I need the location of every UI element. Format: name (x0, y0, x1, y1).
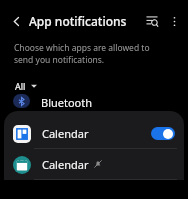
button[interactable]: Back (5, 10, 27, 32)
button[interactable]: Calendar (4, 118, 184, 149)
button[interactable]: Search (141, 10, 163, 32)
button[interactable]: All (9, 76, 43, 96)
staticText: All (15, 80, 26, 92)
button[interactable]: Bluetooth (0, 97, 188, 111)
button[interactable]: Calendar (4, 149, 184, 180)
staticText: Bluetooth (41, 95, 93, 109)
button[interactable]: More options (163, 10, 185, 32)
staticText: Calendar (42, 157, 89, 172)
button[interactable]: Toggle notifications (151, 127, 175, 140)
staticText: Calendar (42, 126, 89, 141)
staticText: App notifications (29, 13, 127, 29)
staticText: Choose which apps are allowed to send yo… (14, 42, 168, 66)
